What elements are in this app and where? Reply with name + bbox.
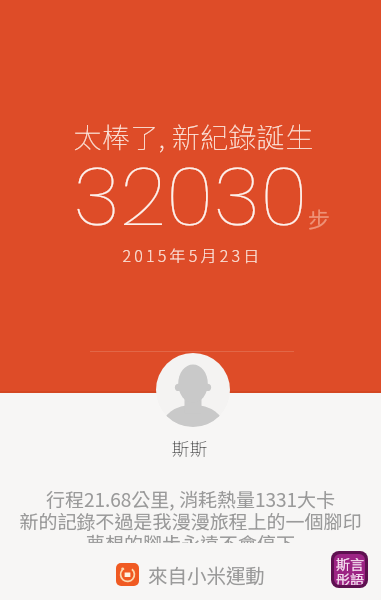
staticText: 32030 bbox=[0, 140, 381, 253]
staticText: 斯斯 bbox=[0, 435, 380, 461]
staticText: 夢想的腳步永遠不會停下 bbox=[0, 529, 381, 543]
button[interactable]: Mi Fit bbox=[0, 560, 381, 588]
staticText: 行程21.68公里, 消耗熱量1331大卡 bbox=[0, 485, 381, 513]
staticText: 新的記錄不過是我漫漫旅程上的一個腳印 bbox=[0, 507, 381, 535]
other: Mi Fit bbox=[116, 563, 139, 586]
staticText: 斯言 彤語 bbox=[336, 554, 364, 585]
staticText: 步 bbox=[308, 202, 331, 234]
staticText: 來自小米運動 bbox=[148, 560, 266, 588]
staticText: 太棒了, 新紀錄誕生 bbox=[3, 116, 381, 157]
other: Watermark bbox=[331, 551, 368, 588]
staticText: 2015年5月23日 bbox=[2, 243, 381, 266]
